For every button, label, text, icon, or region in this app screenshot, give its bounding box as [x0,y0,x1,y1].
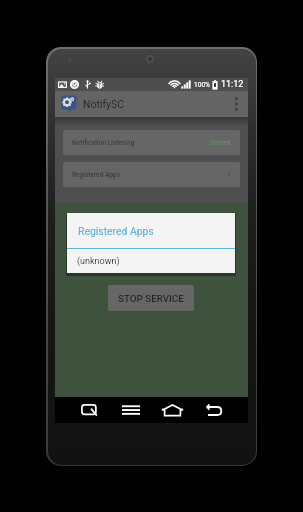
staticText: (unknown) [77,256,120,267]
staticText: NotifySC [83,98,125,110]
staticText: STOP SERVICE [118,293,184,304]
staticText: Notification Listening [72,139,135,147]
button[interactable]: NotifySC [55,91,248,117]
staticText: Registered Apps [72,171,121,179]
button[interactable]: STOP SERVICE [108,285,194,311]
staticText: 1 [227,171,231,179]
button[interactable]: More options [227,91,245,117]
button[interactable]: Notification Listening [63,130,240,155]
button[interactable]: Menu [118,399,144,421]
staticText: 11:12 [221,79,244,90]
staticText: Started [209,139,231,147]
button[interactable]: Back [201,399,227,421]
button[interactable]: Recents [76,399,102,421]
staticText: Registered Apps [78,225,154,237]
button[interactable]: (unknown) [77,249,235,273]
button[interactable]: Home [159,399,185,421]
button[interactable]: Registered Apps [63,162,240,187]
staticText: 100% [194,81,210,89]
